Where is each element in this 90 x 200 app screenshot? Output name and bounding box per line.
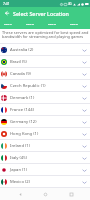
button[interactable]: Japan (1) <box>0 164 90 176</box>
staticText: Brazil (5) <box>10 59 27 65</box>
button[interactable]: Australia (2) <box>0 44 90 56</box>
button[interactable]: FREE #1 <box>0 19 19 29</box>
staticText: These servers are optimized for best spe… <box>2 30 90 39</box>
button[interactable]: Mexico (2) <box>0 176 90 188</box>
staticText: FREE #1 <box>4 23 12 26</box>
staticText: Japan (1) <box>10 167 28 173</box>
button[interactable]: Italy (45) <box>0 152 90 164</box>
button[interactable]: FREE #3 <box>41 19 63 29</box>
button[interactable]: Home <box>39 188 51 200</box>
button[interactable]: Denmark (1) <box>0 92 90 104</box>
button[interactable]: FREE #4 <box>63 19 85 29</box>
button[interactable]: Back <box>0 7 13 19</box>
button[interactable]: Canada (9) <box>0 68 90 80</box>
button[interactable]: Hong Kong (1) <box>0 128 90 140</box>
staticText: Germany (12) <box>10 119 37 125</box>
staticText: Italy (45) <box>10 155 27 161</box>
staticText: Ireland (1) <box>10 143 31 149</box>
button[interactable]: Back <box>14 188 26 200</box>
staticText: Hong Kong (1) <box>10 131 39 137</box>
staticText: Denmark (1) <box>10 95 35 101</box>
staticText: Australia (2) <box>10 47 34 53</box>
button[interactable]: Czech Republic (1) <box>0 80 90 92</box>
staticText: 4G <box>68 2 72 6</box>
button[interactable]: Brazil (5) <box>0 56 90 68</box>
staticText: Mexico (2) <box>10 179 30 185</box>
staticText: Canada (9) <box>10 71 31 77</box>
staticText: France (144) <box>10 107 34 113</box>
button[interactable]: FREE #2 <box>19 19 41 29</box>
staticText: FREE #3 <box>48 23 56 26</box>
button[interactable]: Recents <box>65 188 77 200</box>
staticText: 7:41 <box>3 1 10 6</box>
button[interactable]: France (144) <box>0 104 90 116</box>
staticText: FREE #2 <box>26 23 34 26</box>
button[interactable]: Ireland (1) <box>0 140 90 152</box>
staticText: Czech Republic (1) <box>10 83 46 89</box>
staticText: FREE #4 <box>70 23 78 26</box>
button[interactable]: Germany (12) <box>0 116 90 128</box>
staticText: Select Server Location <box>13 10 69 17</box>
